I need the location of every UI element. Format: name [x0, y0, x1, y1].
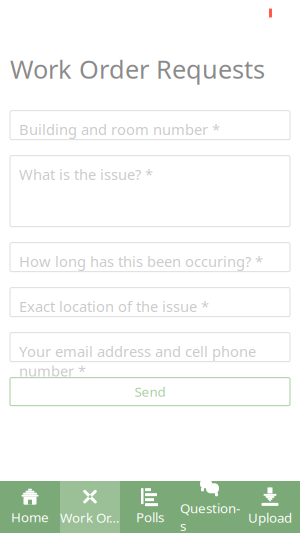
- staticText: Home: [11, 508, 49, 526]
- button[interactable]: Work Or…: [60, 481, 120, 533]
- button[interactable]: Building and room number *: [10, 111, 290, 140]
- staticText: Questions: [180, 499, 240, 533]
- staticText: Send: [134, 383, 165, 400]
- staticText: How long has this been occuring? *: [19, 252, 263, 271]
- button[interactable]: Exact location of the issue *: [10, 288, 290, 317]
- staticText: Upload: [248, 509, 292, 526]
- staticText: What is the issue? *: [19, 165, 153, 184]
- button[interactable]: Home: [0, 481, 60, 533]
- staticText: Exact location of the issue *: [19, 297, 209, 316]
- staticText: Work Order Requests: [10, 52, 265, 86]
- button[interactable]: Polls: [120, 481, 180, 533]
- staticText: Your email address and cell phone number…: [19, 342, 256, 381]
- button[interactable]: Send: [10, 378, 290, 406]
- button[interactable]: What is the issue? *: [10, 156, 290, 227]
- button[interactable]: Your email address and cell phone number…: [10, 333, 290, 362]
- button[interactable]: How long has this been occuring? *: [10, 243, 290, 272]
- button[interactable]: Questions: [180, 481, 240, 533]
- staticText: Work Or…: [60, 509, 120, 526]
- staticText: Polls: [136, 508, 164, 526]
- button[interactable]: Upload: [240, 481, 300, 533]
- staticText: Building and room number *: [19, 120, 220, 139]
